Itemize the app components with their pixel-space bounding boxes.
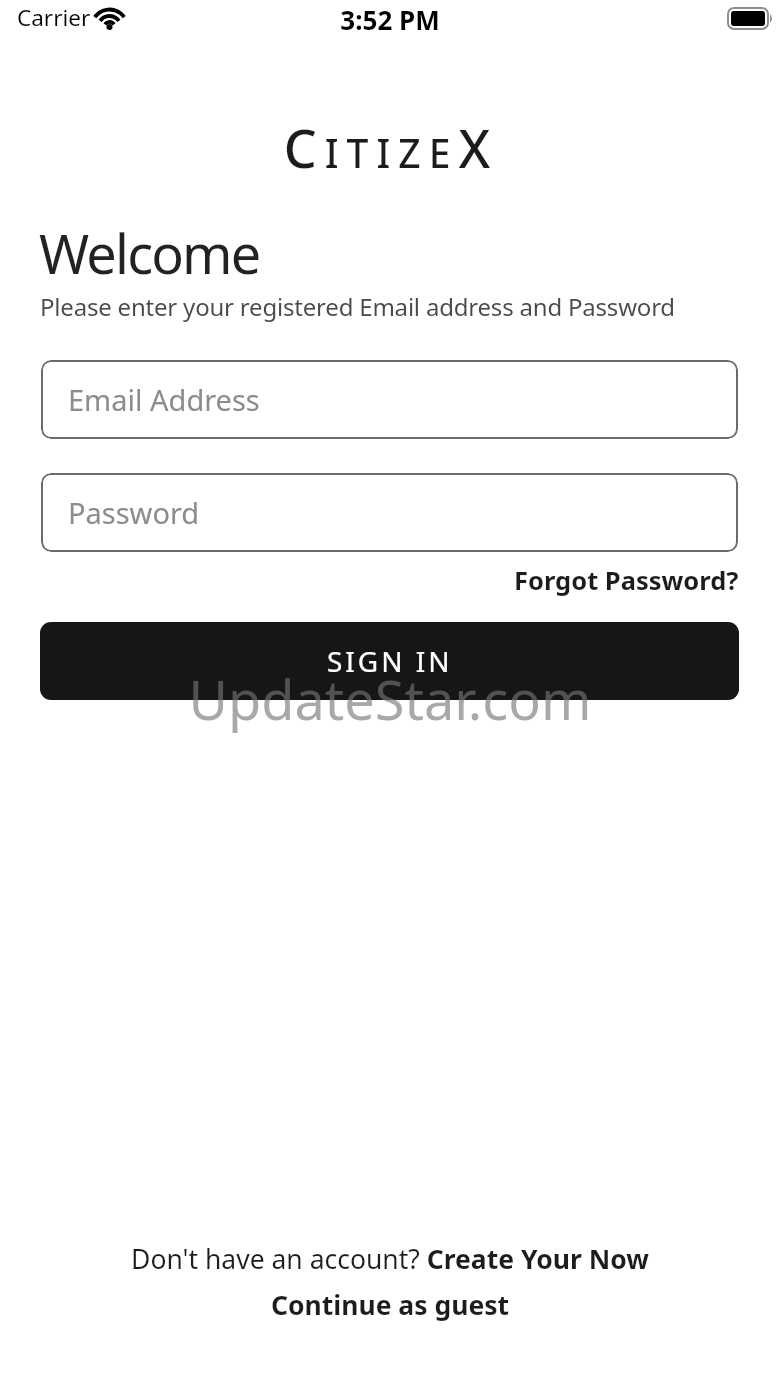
staticText: 3:52 PM: [0, 2, 780, 37]
staticText: Welcome: [39, 216, 260, 290]
staticText: SIGN IN: [327, 642, 453, 680]
staticText: UpdateStar.com: [0, 662, 780, 736]
button[interactable]: Email Address: [41, 360, 738, 439]
button[interactable]: Don't have an account? Create Your Now: [0, 1241, 780, 1277]
staticText: Email Address: [68, 380, 260, 419]
staticText: Password: [68, 493, 200, 532]
staticText: Please enter your registered Email addre…: [40, 290, 675, 323]
staticText: Carrier: [17, 2, 91, 33]
button[interactable]: Password: [41, 473, 738, 552]
button[interactable]: Forgot Password?: [514, 563, 739, 598]
staticText: CITIZEX: [0, 112, 777, 183]
button[interactable]: SIGN IN: [40, 622, 739, 700]
button[interactable]: Continue as guest: [0, 1287, 780, 1323]
